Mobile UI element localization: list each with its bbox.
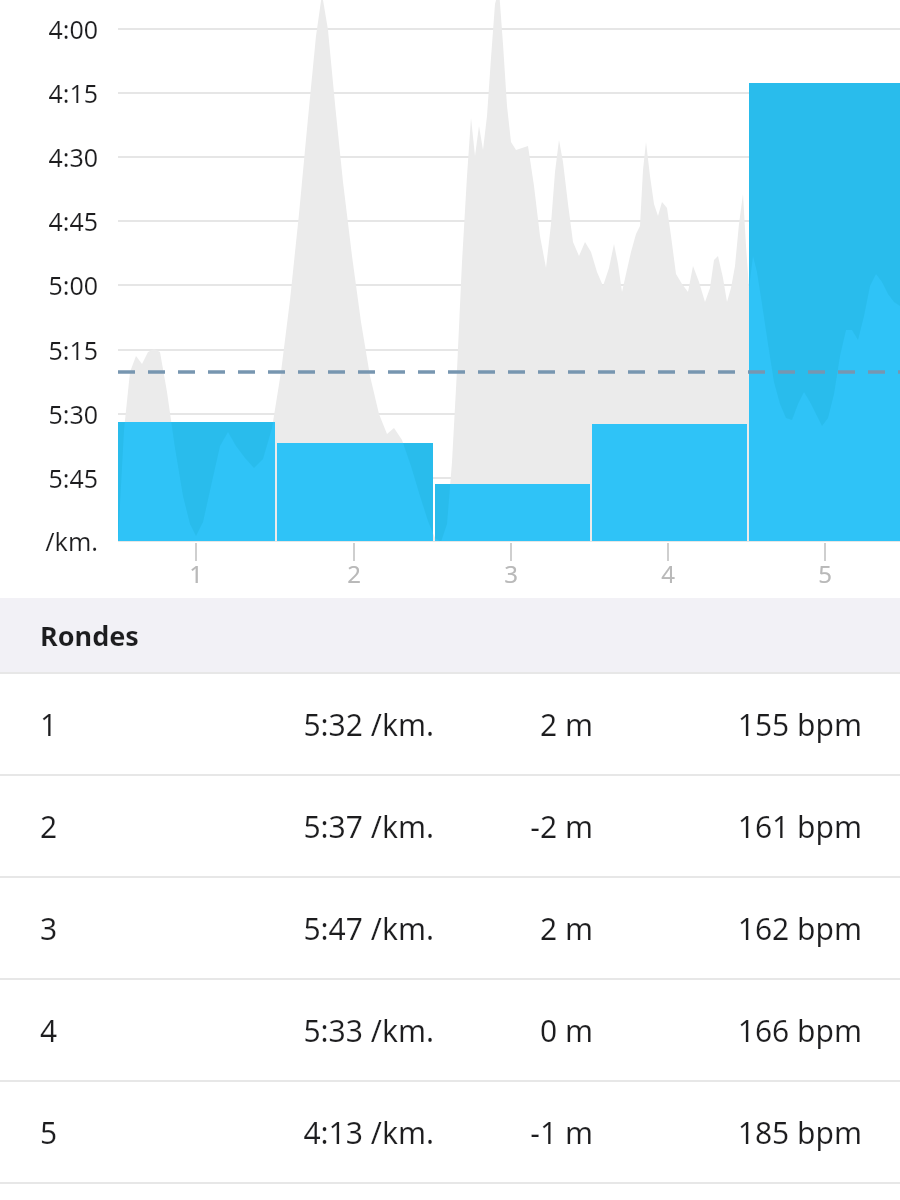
staticText: 4:15 — [48, 76, 98, 110]
staticText: 2 — [40, 806, 150, 847]
button[interactable]: 5 — [0, 1082, 900, 1182]
staticText: -2 m — [434, 806, 593, 847]
staticText: 161 bpm — [593, 806, 862, 847]
button[interactable]: 3 — [0, 878, 900, 978]
staticText: 2 — [347, 557, 361, 590]
button[interactable]: Rondes — [0, 598, 900, 672]
staticText: 5 — [818, 557, 832, 590]
staticText: 162 bpm — [593, 908, 862, 949]
staticText: 5:45 — [48, 461, 98, 495]
button[interactable]: 4 — [0, 980, 900, 1080]
staticText: 5:47 /km. — [150, 908, 434, 949]
staticText: 1 — [40, 704, 150, 745]
staticText: 5:33 /km. — [150, 1010, 434, 1051]
staticText: Rondes — [40, 617, 139, 654]
staticText: 5:00 — [48, 268, 98, 302]
staticText: 4:30 — [48, 140, 98, 174]
staticText: 0 m — [434, 1010, 593, 1051]
staticText: 2 m — [434, 704, 593, 745]
staticText: 5:15 — [48, 333, 98, 367]
staticText: 5:32 /km. — [150, 704, 434, 745]
staticText: 3 — [504, 557, 518, 590]
staticText: 4:00 — [48, 12, 98, 46]
staticText: 5:37 /km. — [150, 806, 434, 847]
staticText: 4:13 /km. — [150, 1112, 434, 1153]
staticText: 185 bpm — [593, 1112, 862, 1153]
staticText: 166 bpm — [593, 1010, 862, 1051]
staticText: 2 m — [434, 908, 593, 949]
staticText: 3 — [40, 908, 150, 949]
staticText: 5:30 — [48, 397, 98, 431]
staticText: 4 — [661, 557, 675, 590]
button[interactable]: 1 — [0, 674, 900, 774]
staticText: 4 — [40, 1010, 150, 1051]
staticText: -1 m — [434, 1112, 593, 1153]
staticText: 1 — [189, 557, 203, 590]
staticText: 155 bpm — [593, 704, 862, 745]
staticText: 4:45 — [48, 204, 98, 238]
staticText: 5 — [40, 1112, 150, 1153]
button[interactable]: 2 — [0, 776, 900, 876]
staticText: /km. — [45, 524, 98, 558]
